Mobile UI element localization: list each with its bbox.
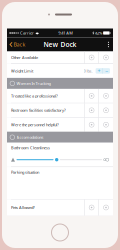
staticText: Carrier (20, 30, 34, 36)
staticText: Back (13, 41, 25, 48)
staticText: Women In Trucking (17, 81, 51, 86)
button[interactable]: Other Available (7, 51, 113, 63)
staticText: Bathroom Cleanliness (11, 145, 50, 150)
staticText: Pets Allowed? (11, 205, 35, 210)
button[interactable]: More options (104, 37, 113, 51)
staticText: Parking situation (11, 169, 39, 175)
button[interactable]: Restroom facilities satisfactory? (7, 103, 113, 117)
staticText: Restroom facilities satisfactory? (11, 108, 66, 113)
staticText: − (105, 67, 108, 74)
button[interactable]: Back (7, 37, 28, 51)
staticText: 42% (95, 30, 102, 36)
staticText: Other Available (11, 55, 38, 60)
button[interactable]: Adjust weight limit (93, 68, 113, 74)
staticText: Accomodations (17, 134, 44, 140)
button[interactable]: Pets Allowed? (7, 199, 113, 215)
button[interactable]: Were the personnel helpful? (7, 118, 113, 132)
staticText: 9:41 AM (58, 30, 73, 36)
staticText: + (98, 67, 101, 74)
staticText: Weight Limit (11, 68, 33, 73)
staticText: Were the personnel helpful? (11, 122, 59, 127)
staticText: New Dock (43, 40, 76, 49)
staticText: Treated like a professional? (11, 93, 58, 98)
button[interactable]: Treated like a professional? (7, 89, 113, 103)
staticText: 0 lbs. (84, 68, 93, 73)
